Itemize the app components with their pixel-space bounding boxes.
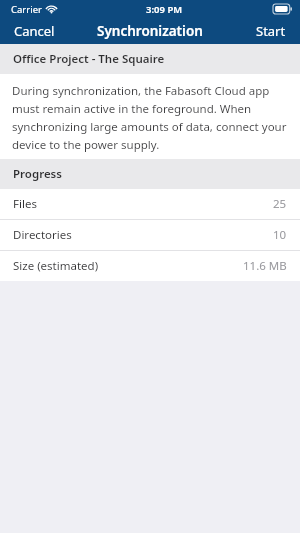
button[interactable]: Cancel <box>0 18 69 44</box>
staticText: Directories <box>13 227 72 243</box>
staticText: During synchronization, the Fabasoft Clo… <box>12 83 288 152</box>
staticText: 25 <box>273 196 287 212</box>
staticText: Start <box>256 22 286 40</box>
staticText: Office Project - The Squaire <box>13 51 165 67</box>
staticText: 3:09 PM <box>146 3 183 16</box>
staticText: Carrier <box>11 3 42 16</box>
staticText: 11.6 MB <box>243 258 287 274</box>
staticText: Progress <box>13 166 62 182</box>
staticText: Files <box>13 196 37 212</box>
staticText: Synchronization <box>97 22 203 40</box>
button[interactable]: Size (estimated) <box>0 251 300 281</box>
button[interactable]: Files <box>0 189 300 219</box>
staticText: 10 <box>273 227 287 243</box>
button[interactable]: Start <box>242 18 300 44</box>
button[interactable]: Directories <box>0 220 300 250</box>
staticText: Cancel <box>14 22 55 40</box>
staticText: Size (estimated) <box>13 258 99 274</box>
